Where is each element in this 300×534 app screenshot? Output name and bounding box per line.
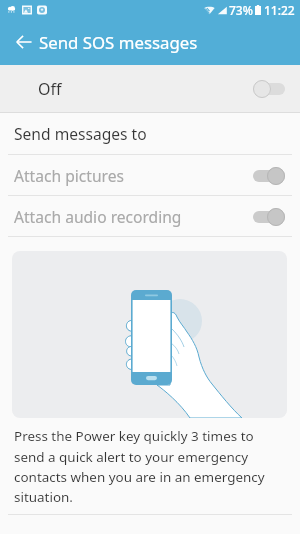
button[interactable]: Back	[10, 28, 38, 56]
staticText: Off	[38, 78, 62, 100]
staticText: Send messages to	[14, 123, 147, 144]
button[interactable]: Attach audio recording	[0, 196, 300, 236]
staticText: Send SOS messages	[39, 31, 198, 54]
button[interactable]: Send messages to	[0, 113, 300, 154]
staticText: Press the Power key quickly 3 times to s…	[14, 427, 275, 506]
button[interactable]: Off	[0, 65, 300, 112]
staticText: 73%	[229, 2, 253, 18]
staticText: 11:22	[264, 2, 295, 18]
button[interactable]: Attach pictures	[0, 155, 300, 195]
staticText: Attach pictures	[14, 165, 124, 186]
staticText: Attach audio recording	[14, 206, 182, 227]
